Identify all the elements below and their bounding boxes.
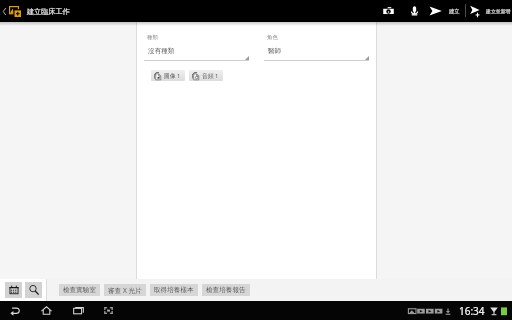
button[interactable]: Navigate up xyxy=(0,0,9,22)
button[interactable]: 建立並新增 xyxy=(470,0,511,22)
button[interactable]: 取得培養樣本 xyxy=(150,284,198,296)
staticText: 角色 xyxy=(267,34,278,41)
button[interactable]: 審查 X 光片 xyxy=(104,284,146,296)
button[interactable]: Camera xyxy=(377,0,399,22)
staticText: 圖像 1 xyxy=(164,72,181,80)
staticText: 建立臨床工作 xyxy=(27,7,70,16)
staticText: 沒有種類 xyxy=(148,47,175,55)
button[interactable]: Search xyxy=(25,282,42,298)
staticText: 醫師 xyxy=(268,47,282,55)
staticText: 審查 X 光片 xyxy=(108,286,142,295)
button[interactable]: 檢查培養報告 xyxy=(202,284,250,296)
staticText: 檢查培養報告 xyxy=(206,286,246,294)
button[interactable]: Home xyxy=(40,304,53,317)
button[interactable]: 建立 xyxy=(429,0,460,22)
button[interactable]: 音頻 1 xyxy=(189,70,223,81)
staticText: 建立 xyxy=(449,8,460,15)
staticText: 16:34 xyxy=(459,304,485,318)
staticText: 音頻 1 xyxy=(202,72,219,80)
staticText: 檢查實驗室 xyxy=(63,286,96,294)
staticText: 取得培養樣本 xyxy=(154,286,194,294)
button[interactable]: Calendar xyxy=(5,282,22,298)
button[interactable]: 圖像 1 xyxy=(151,70,185,81)
button[interactable]: Recent apps xyxy=(72,304,85,317)
button[interactable]: Back xyxy=(8,304,21,317)
button[interactable]: Microphone xyxy=(404,0,424,22)
staticText: 種類 xyxy=(147,34,158,41)
staticText: 建立並新增 xyxy=(486,8,511,14)
button[interactable]: 檢查實驗室 xyxy=(59,284,100,296)
button[interactable]: Screenshot xyxy=(102,304,115,317)
